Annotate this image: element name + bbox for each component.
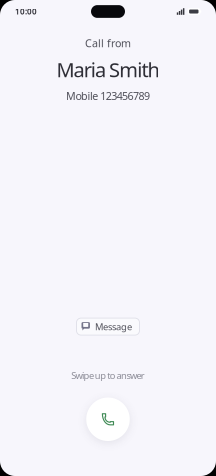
button[interactable]: Message xyxy=(76,318,139,335)
staticText: 10:00 xyxy=(15,6,37,17)
staticText: Swipe up to answer xyxy=(71,369,145,381)
staticText: Mobile 123456789 xyxy=(66,89,150,103)
staticText: Maria Smith xyxy=(56,56,159,83)
staticText: Call from xyxy=(85,36,131,50)
staticText: Message xyxy=(95,320,132,333)
button[interactable]: Answer call xyxy=(86,397,130,441)
